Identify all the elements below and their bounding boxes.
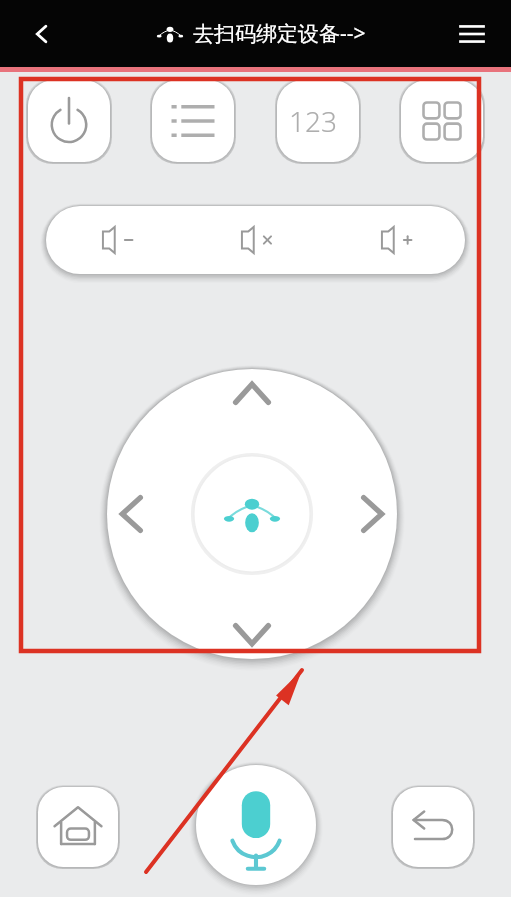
button[interactable]: Voice xyxy=(191,760,321,890)
button[interactable]: Right xyxy=(331,469,401,559)
button[interactable]: Apps grid xyxy=(399,78,485,164)
button[interactable]: Power xyxy=(26,78,112,164)
button[interactable]: Volume up xyxy=(325,206,465,274)
button[interactable]: Menu list xyxy=(150,78,236,164)
staticText: 123 xyxy=(289,102,337,140)
button[interactable]: Left xyxy=(103,469,173,559)
button[interactable]: Back xyxy=(18,12,62,56)
button[interactable]: OK xyxy=(194,456,310,572)
button[interactable]: Menu xyxy=(449,11,495,57)
button[interactable]: Mute xyxy=(185,206,325,274)
staticText: 去扫码绑定设备--> xyxy=(193,19,366,48)
button[interactable]: 去扫码绑定设备--> xyxy=(157,19,366,48)
button[interactable]: Down xyxy=(207,593,297,663)
button[interactable]: Back xyxy=(391,785,475,869)
button[interactable]: Volume down xyxy=(46,206,185,274)
button[interactable]: Numbers xyxy=(275,78,361,164)
button[interactable]: Home xyxy=(36,785,120,869)
button[interactable]: Up xyxy=(207,365,297,435)
